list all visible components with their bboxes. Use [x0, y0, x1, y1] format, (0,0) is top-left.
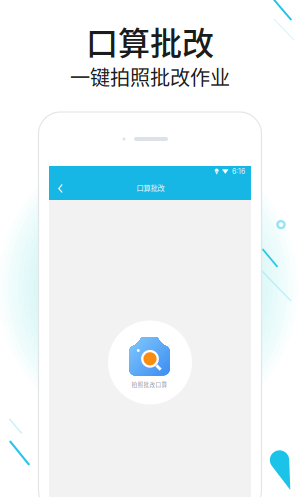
- staticText: 6:16: [232, 167, 245, 176]
- button[interactable]: 拍照批改口算: [108, 320, 192, 404]
- staticText: 拍照批改口算: [131, 380, 167, 388]
- staticText: 口算批改: [86, 18, 214, 64]
- staticText: 口算批改: [136, 182, 164, 193]
- button[interactable]: Back: [53, 180, 69, 196]
- staticText: 一键拍照批改作业: [70, 62, 230, 91]
